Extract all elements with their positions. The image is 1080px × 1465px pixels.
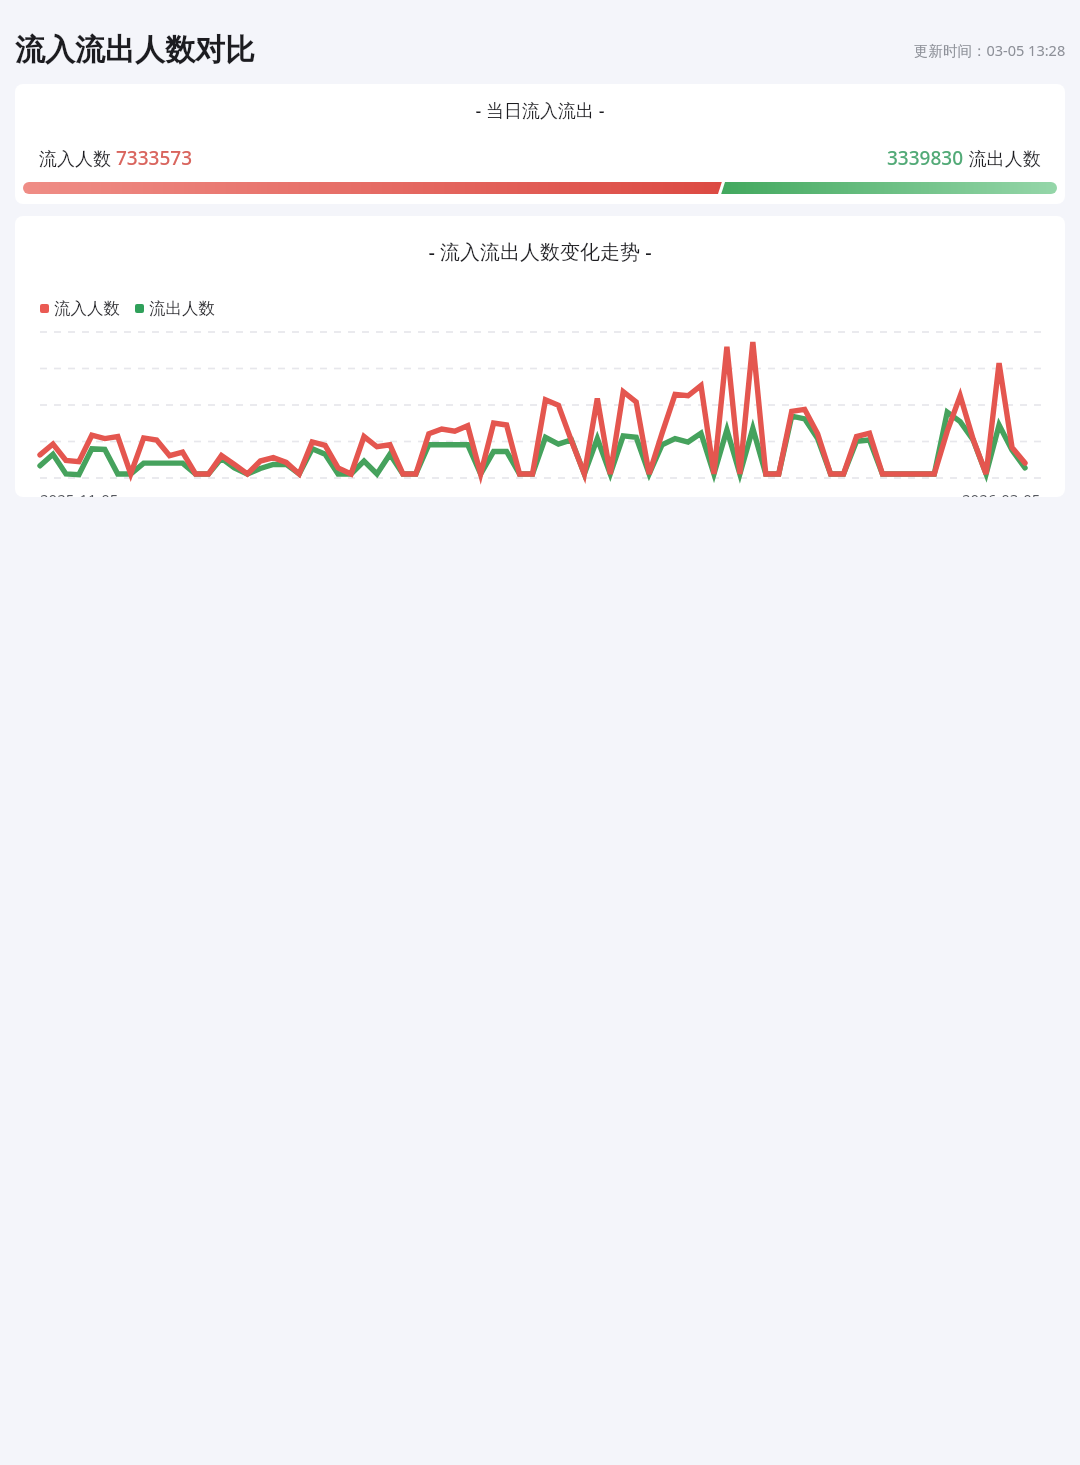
staticText: 3339830 (887, 145, 964, 171)
staticText: 2025-11-05 (40, 489, 119, 497)
staticText: 7333573 (116, 145, 193, 171)
staticText: - 流入流出人数变化走势 - (15, 238, 1065, 265)
staticText: - 当日流入流出 - (15, 98, 1065, 123)
button[interactable]: - 流入流出人数变化走势 - (15, 216, 1065, 497)
staticText: 流出人数 (149, 298, 215, 319)
staticText: 流入人数 (54, 298, 120, 319)
other: 流入流出占比 (23, 182, 1057, 194)
staticText: 更新时间：03-05 13:28 (914, 40, 1066, 60)
staticText: 流入流出人数对比 (15, 31, 255, 69)
staticText: 流入人数 (39, 146, 116, 171)
staticText: 2026-03-05 (962, 489, 1041, 497)
staticText: 流出人数 (964, 146, 1041, 171)
button[interactable]: - 当日流入流出 - (15, 84, 1065, 204)
